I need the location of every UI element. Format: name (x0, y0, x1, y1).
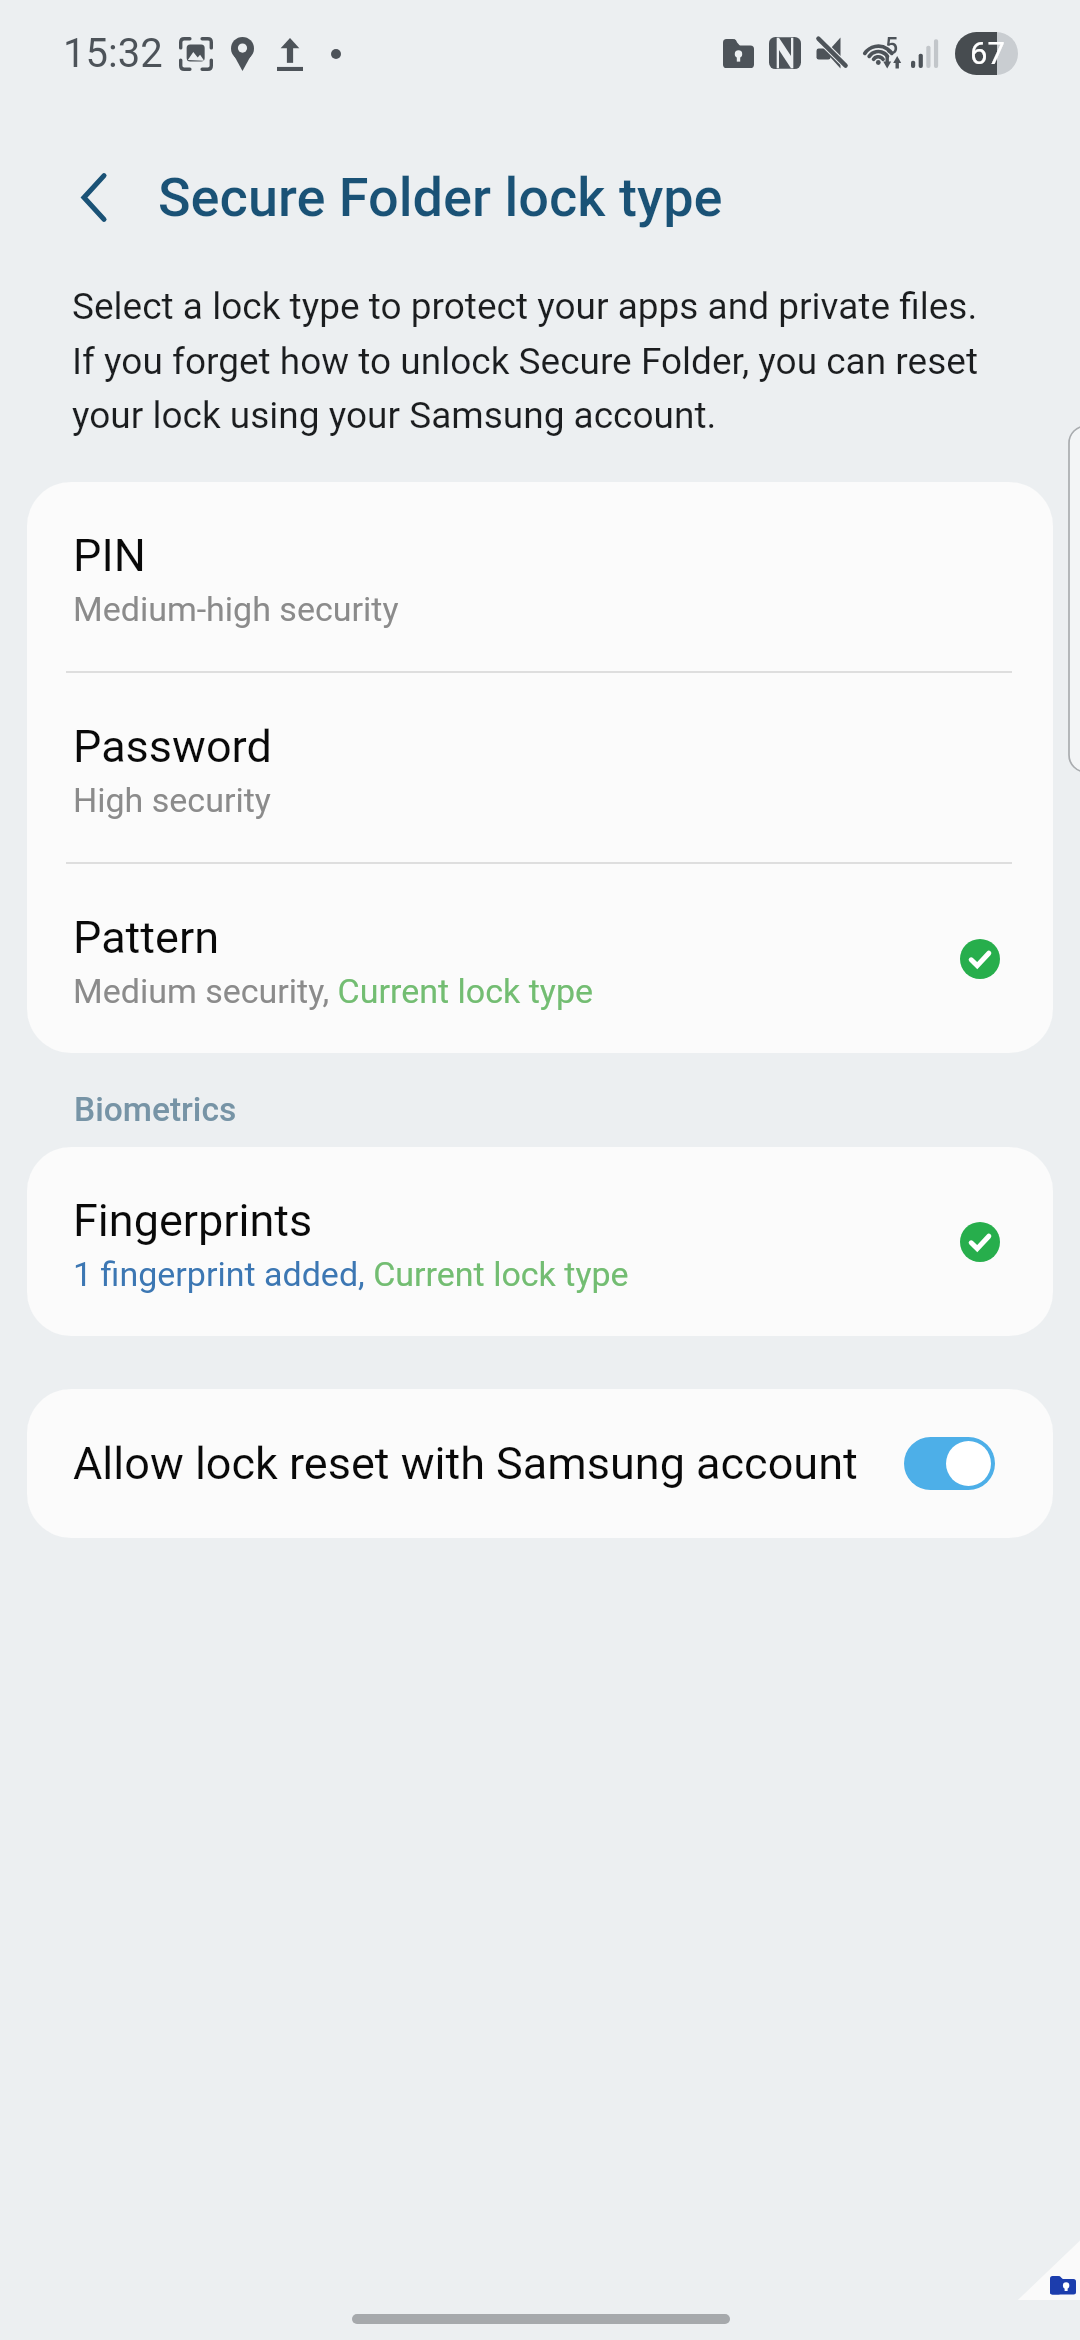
button[interactable]: Back (52, 155, 134, 237)
staticText: Allow lock reset with Samsung account (73, 1437, 858, 1490)
staticText: Select a lock type to protect your apps … (72, 285, 987, 437)
staticText: 15:32 (63, 30, 163, 77)
staticText: High security (73, 780, 271, 820)
staticText: PIN (73, 529, 146, 582)
button[interactable]: Fingerprints (27, 1147, 1053, 1336)
staticText: Password (73, 720, 272, 773)
staticText: Medium security, Current lock type (73, 971, 594, 1011)
button[interactable]: Pattern (27, 864, 1053, 1053)
staticText: Pattern (73, 911, 220, 964)
button[interactable]: PIN (27, 482, 1053, 671)
staticText: 5 (885, 33, 899, 60)
staticText: Biometrics (74, 1090, 237, 1129)
button[interactable]: Password (27, 673, 1053, 862)
staticText: Secure Folder lock type (158, 166, 723, 229)
staticText: Fingerprints (73, 1194, 313, 1247)
staticText: 1 fingerprint added, Current lock type (73, 1254, 629, 1294)
button[interactable]: Allow lock reset with Samsung account (27, 1389, 1053, 1538)
staticText: Medium-high security (73, 589, 399, 629)
staticText: 67 (970, 35, 1005, 71)
